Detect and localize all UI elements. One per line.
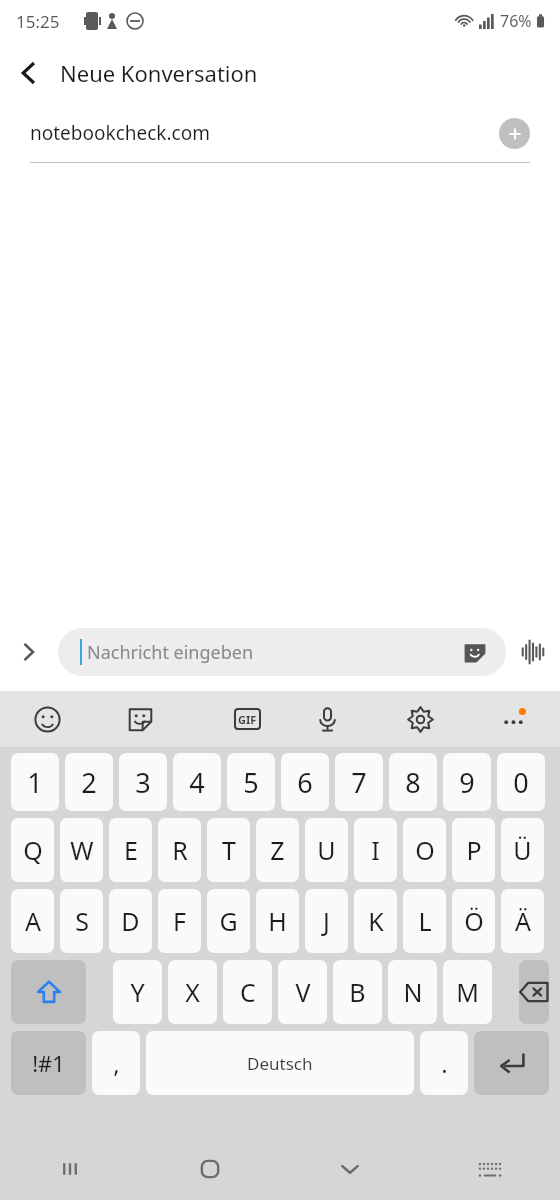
button[interactable]: 0 — [497, 753, 545, 811]
staticText: H — [268, 904, 287, 938]
button[interactable]: Emoji — [24, 696, 70, 742]
button[interactable]: 8 — [389, 753, 437, 811]
button[interactable]: R — [158, 818, 201, 882]
staticText: 4 — [189, 764, 205, 801]
button[interactable]: H — [256, 889, 299, 953]
button[interactable]: T — [207, 818, 250, 882]
staticText: 6 — [297, 764, 313, 801]
button[interactable]: Tastatur wechseln — [420, 1138, 560, 1200]
staticText: 5 — [243, 764, 259, 801]
staticText: 15:25 — [16, 10, 60, 33]
button[interactable]: K — [354, 889, 397, 953]
button[interactable]: Tastatur schließen — [280, 1138, 420, 1200]
button[interactable]: D — [109, 889, 152, 953]
staticText: Ö — [464, 904, 484, 938]
button[interactable]: A — [11, 889, 54, 953]
staticText: 0 — [513, 764, 529, 801]
button[interactable]: Letzte Apps — [0, 1138, 140, 1200]
button[interactable]: 5 — [227, 753, 275, 811]
button[interactable]: . — [420, 1031, 468, 1095]
staticText: M — [456, 975, 479, 1009]
staticText: O — [415, 833, 435, 867]
staticText: , — [113, 1047, 120, 1080]
staticText: X — [185, 975, 200, 1009]
button[interactable]: Ö — [452, 889, 495, 953]
button[interactable]: Umschalttaste — [11, 960, 86, 1024]
button[interactable]: O — [403, 818, 446, 882]
button[interactable]: !#1 — [11, 1031, 86, 1095]
button[interactable]: 9 — [443, 753, 491, 811]
button[interactable]: Eingabe — [474, 1031, 549, 1095]
button[interactable]: Sprachnachricht — [506, 625, 560, 679]
staticText: Neue Konversation — [60, 58, 258, 88]
staticText: B — [349, 975, 366, 1009]
button[interactable]: W — [60, 818, 103, 882]
staticText: Q — [23, 833, 43, 867]
button[interactable]: G — [207, 889, 250, 953]
staticText: Z — [270, 833, 285, 867]
staticText: 2 — [81, 764, 97, 801]
staticText: W — [70, 833, 94, 867]
button[interactable]: 2 — [65, 753, 113, 811]
staticText: V — [295, 975, 311, 1009]
staticText: D — [121, 904, 140, 938]
staticText: E — [124, 833, 138, 867]
button[interactable]: Kontakt hinzufügen — [499, 118, 530, 149]
staticText: A — [25, 904, 41, 938]
button[interactable]: GIF — [210, 696, 256, 742]
button[interactable]: V — [278, 960, 327, 1024]
button[interactable]: 4 — [173, 753, 221, 811]
button[interactable]: Sticker — [460, 637, 490, 667]
button[interactable]: E — [109, 818, 152, 882]
button[interactable]: X — [168, 960, 217, 1024]
button[interactable]: Nachricht eingeben — [58, 628, 506, 676]
button[interactable]: J — [305, 889, 348, 953]
button[interactable]: M — [443, 960, 492, 1024]
button[interactable]: N — [388, 960, 437, 1024]
button[interactable]: Z — [256, 818, 299, 882]
button[interactable]: Ä — [501, 889, 544, 953]
staticText: F — [173, 904, 186, 938]
button[interactable]: 3 — [119, 753, 167, 811]
staticText: G — [219, 904, 238, 938]
button[interactable]: , — [92, 1031, 140, 1095]
button[interactable]: C — [223, 960, 272, 1024]
staticText: 3 — [135, 764, 151, 801]
button[interactable]: Mehr Optionen — [0, 623, 58, 681]
staticText: GIF — [238, 712, 257, 727]
staticText: 9 — [459, 764, 475, 801]
staticText: 76% — [500, 10, 532, 32]
button[interactable]: U — [305, 818, 348, 882]
button[interactable]: Sticker — [117, 696, 163, 742]
button[interactable]: 6 — [281, 753, 329, 811]
staticText: K — [368, 904, 384, 938]
button[interactable]: 1 — [11, 753, 59, 811]
button[interactable]: Einstellungen — [397, 696, 443, 742]
button[interactable]: Spracheingabe — [304, 696, 350, 742]
staticText: R — [172, 833, 188, 867]
button[interactable]: I — [354, 818, 397, 882]
button[interactable]: Mehr — [490, 696, 536, 742]
button[interactable]: Ü — [501, 818, 544, 882]
button[interactable]: S — [60, 889, 103, 953]
button[interactable]: Deutsch — [146, 1031, 414, 1095]
staticText: C — [240, 975, 256, 1009]
button[interactable]: Y — [113, 960, 162, 1024]
button[interactable]: L — [403, 889, 446, 953]
staticText: I — [371, 833, 380, 867]
button[interactable]: Startbildschirm — [140, 1138, 280, 1200]
staticText: 7 — [351, 764, 367, 801]
button[interactable]: Zurück — [0, 45, 56, 101]
staticText: S — [75, 904, 89, 938]
button[interactable]: 7 — [335, 753, 383, 811]
button[interactable]: Q — [11, 818, 54, 882]
staticText: Ü — [513, 833, 532, 867]
staticText: notebookcheck.com — [30, 120, 499, 146]
staticText: L — [418, 904, 432, 938]
button[interactable]: F — [158, 889, 201, 953]
button[interactable]: P — [452, 818, 495, 882]
button[interactable]: B — [333, 960, 382, 1024]
button[interactable]: Löschen — [519, 960, 549, 1024]
staticText: Deutsch — [247, 1052, 313, 1075]
staticText: 8 — [405, 764, 421, 801]
